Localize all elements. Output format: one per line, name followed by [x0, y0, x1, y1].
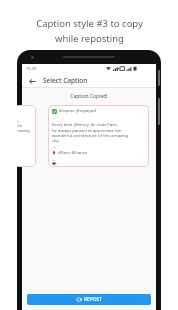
staticText: s, — [17, 118, 19, 123]
staticText: Every time @henry_ds visits Paris, he al… — [52, 122, 129, 143]
staticText: #repost @voyaged — [59, 108, 96, 114]
staticText: mazing — [17, 128, 30, 133]
staticText: while reposting — [55, 32, 124, 45]
staticText: #Paris #France — [58, 150, 88, 156]
button[interactable]: #repost @voyaged — [48, 105, 149, 167]
staticText: the — [17, 123, 23, 128]
staticText: 15:39 — [26, 66, 37, 71]
staticText: ・ ・ ・ — [52, 115, 64, 120]
staticText: Caption style #3 to copy — [36, 17, 143, 30]
staticText: — — [52, 144, 56, 149]
button[interactable]: s, — [17, 105, 36, 167]
staticText: Caption Copied! — [22, 93, 156, 100]
button[interactable]: Back — [26, 75, 38, 87]
staticText: REPOST — [84, 296, 102, 303]
button[interactable]: REPOST — [27, 294, 151, 305]
staticText: — — [52, 157, 56, 162]
staticText: Select Caption — [43, 76, 88, 85]
